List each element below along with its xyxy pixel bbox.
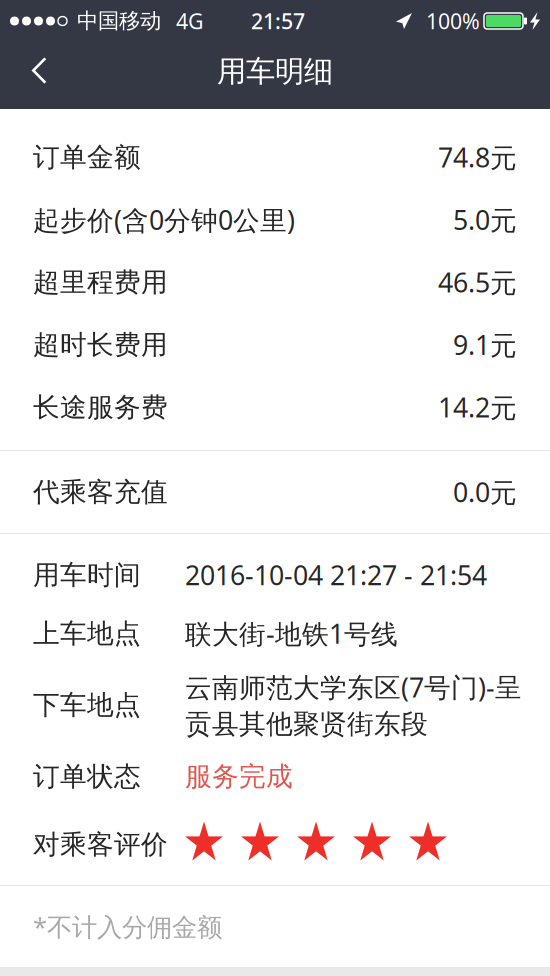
staticText: 74.8元 bbox=[438, 139, 517, 175]
staticText: 超里程费用 bbox=[33, 266, 168, 299]
staticText: 中国移动 bbox=[77, 8, 161, 34]
staticText: 100% bbox=[426, 7, 480, 35]
staticText: 联大街-地铁1号线 bbox=[185, 616, 398, 651]
staticText: 14.2元 bbox=[438, 389, 517, 425]
staticText: 上车地点 bbox=[33, 617, 141, 650]
staticText: 下车地点 bbox=[33, 689, 141, 721]
staticText: 46.5元 bbox=[438, 264, 517, 300]
button[interactable]: Back bbox=[0, 42, 71, 109]
staticText: 服务完成 bbox=[185, 760, 293, 793]
staticText: *不计入分佣金额 bbox=[33, 910, 222, 943]
staticText: 9.1元 bbox=[453, 327, 517, 362]
staticText: 代乘客充值 bbox=[33, 476, 168, 508]
staticText: 用车明细 bbox=[217, 53, 333, 89]
staticText: 对乘客评价 bbox=[33, 828, 168, 861]
staticText: 订单状态 bbox=[33, 760, 141, 793]
staticText: 超时长费用 bbox=[33, 328, 168, 361]
staticText: 长途服务费 bbox=[33, 391, 168, 424]
staticText: 21:57 bbox=[251, 7, 305, 35]
staticText: 0.0元 bbox=[453, 474, 517, 510]
staticText: 4G bbox=[176, 7, 204, 35]
staticText: 起步价(含0分钟0公里) bbox=[33, 202, 295, 237]
staticText: 订单金额 bbox=[33, 141, 141, 174]
staticText: 2016-10-04 21:27 - 21:54 bbox=[185, 557, 487, 593]
staticText: 贡县其他聚贤街东段 bbox=[185, 708, 428, 741]
staticText: 5.0元 bbox=[453, 202, 517, 237]
staticText: 云南师范大学东区(7号门)-呈 bbox=[185, 669, 522, 705]
staticText: 用车时间 bbox=[33, 559, 141, 591]
